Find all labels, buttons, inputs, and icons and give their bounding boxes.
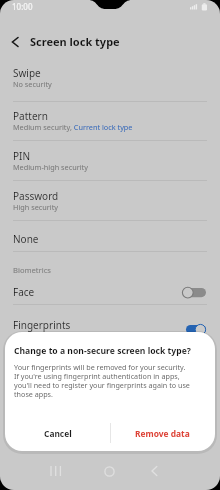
button[interactable]: Swipe bbox=[0, 62, 220, 100]
staticText: Your fingerprints will be removed for yo… bbox=[14, 362, 190, 399]
staticText: 10:00 bbox=[12, 1, 33, 12]
staticText: Remove data bbox=[135, 428, 190, 439]
staticText: Password bbox=[13, 189, 59, 203]
button[interactable]: Face bbox=[0, 281, 220, 307]
staticText: Fingerprints bbox=[13, 318, 71, 332]
staticText: Face bbox=[13, 285, 35, 299]
button[interactable] bbox=[151, 466, 158, 476]
button[interactable] bbox=[50, 466, 63, 476]
staticText: Swipe bbox=[13, 66, 41, 80]
staticText: Cancel bbox=[44, 428, 72, 439]
button[interactable]: Password bbox=[0, 185, 220, 223]
button[interactable]: Fingerprints bbox=[0, 314, 220, 340]
button[interactable]: Remove data bbox=[110, 418, 215, 448]
button[interactable]: Pattern bbox=[0, 105, 220, 143]
staticText: Medium-high security bbox=[13, 162, 88, 172]
staticText: Biometrics bbox=[13, 265, 51, 275]
button[interactable] bbox=[11, 37, 20, 47]
staticText: Screen lock type bbox=[30, 34, 120, 49]
button[interactable]: None bbox=[0, 228, 220, 254]
staticText: Change to a non-secure screen lock type? bbox=[14, 345, 191, 357]
staticText: None bbox=[13, 232, 39, 246]
staticText: PIN bbox=[13, 149, 31, 163]
staticText: Medium security, Current lock type bbox=[13, 122, 133, 132]
button[interactable] bbox=[104, 466, 115, 477]
button[interactable]: Cancel bbox=[5, 418, 110, 448]
button[interactable]: PIN bbox=[0, 145, 220, 183]
staticText: Pattern bbox=[13, 109, 48, 123]
staticText: High security bbox=[13, 202, 59, 212]
staticText: No security bbox=[13, 79, 52, 89]
